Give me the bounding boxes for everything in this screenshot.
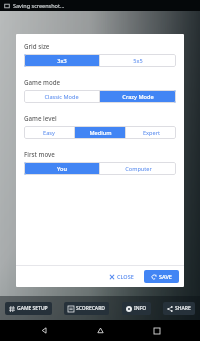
staticText: GAME SETUP	[17, 305, 48, 312]
staticText: SHARE	[175, 305, 191, 312]
button[interactable]: Expert	[126, 126, 176, 139]
button[interactable]: 5x5	[100, 54, 176, 67]
button[interactable]: CLOSE	[103, 270, 140, 283]
button[interactable]: SHARE	[163, 302, 195, 315]
staticText: Expert	[143, 129, 160, 137]
staticText: Medium	[89, 129, 112, 137]
button[interactable]: Easy	[24, 126, 74, 139]
staticText: Classic Mode	[44, 93, 79, 101]
button[interactable]: Computer	[100, 162, 176, 175]
staticText: Grid size	[24, 42, 50, 50]
staticText: Crazy Mode	[122, 93, 154, 101]
button[interactable]: INFO	[122, 302, 151, 315]
staticText: 5x5	[133, 57, 143, 65]
button[interactable]: SAVE	[144, 270, 179, 283]
staticText: INFO	[134, 305, 147, 312]
button[interactable]: SCORECARD	[64, 302, 109, 315]
button[interactable]: Home	[87, 320, 113, 341]
staticText: SAVE	[159, 273, 172, 280]
staticText: Saving screenshot…	[13, 2, 65, 9]
button[interactable]: Crazy Mode	[100, 90, 176, 103]
staticText: Game level	[24, 114, 57, 122]
staticText: Game mode	[24, 78, 61, 86]
button[interactable]: You	[24, 162, 99, 175]
button[interactable]: 3x3	[24, 54, 99, 67]
button[interactable]: Recent apps	[144, 320, 170, 341]
staticText: Computer	[125, 165, 152, 173]
staticText: Easy	[43, 129, 55, 137]
button[interactable]: GAME SETUP	[5, 302, 52, 315]
staticText: SCORECARD	[76, 305, 105, 312]
staticText: First move	[24, 150, 55, 158]
button[interactable]: Back	[31, 320, 57, 341]
button[interactable]: Classic Mode	[24, 90, 99, 103]
button[interactable]: Medium	[75, 126, 125, 139]
staticText: You	[57, 165, 67, 173]
staticText: 3x3	[57, 57, 67, 65]
staticText: CLOSE	[117, 273, 134, 280]
